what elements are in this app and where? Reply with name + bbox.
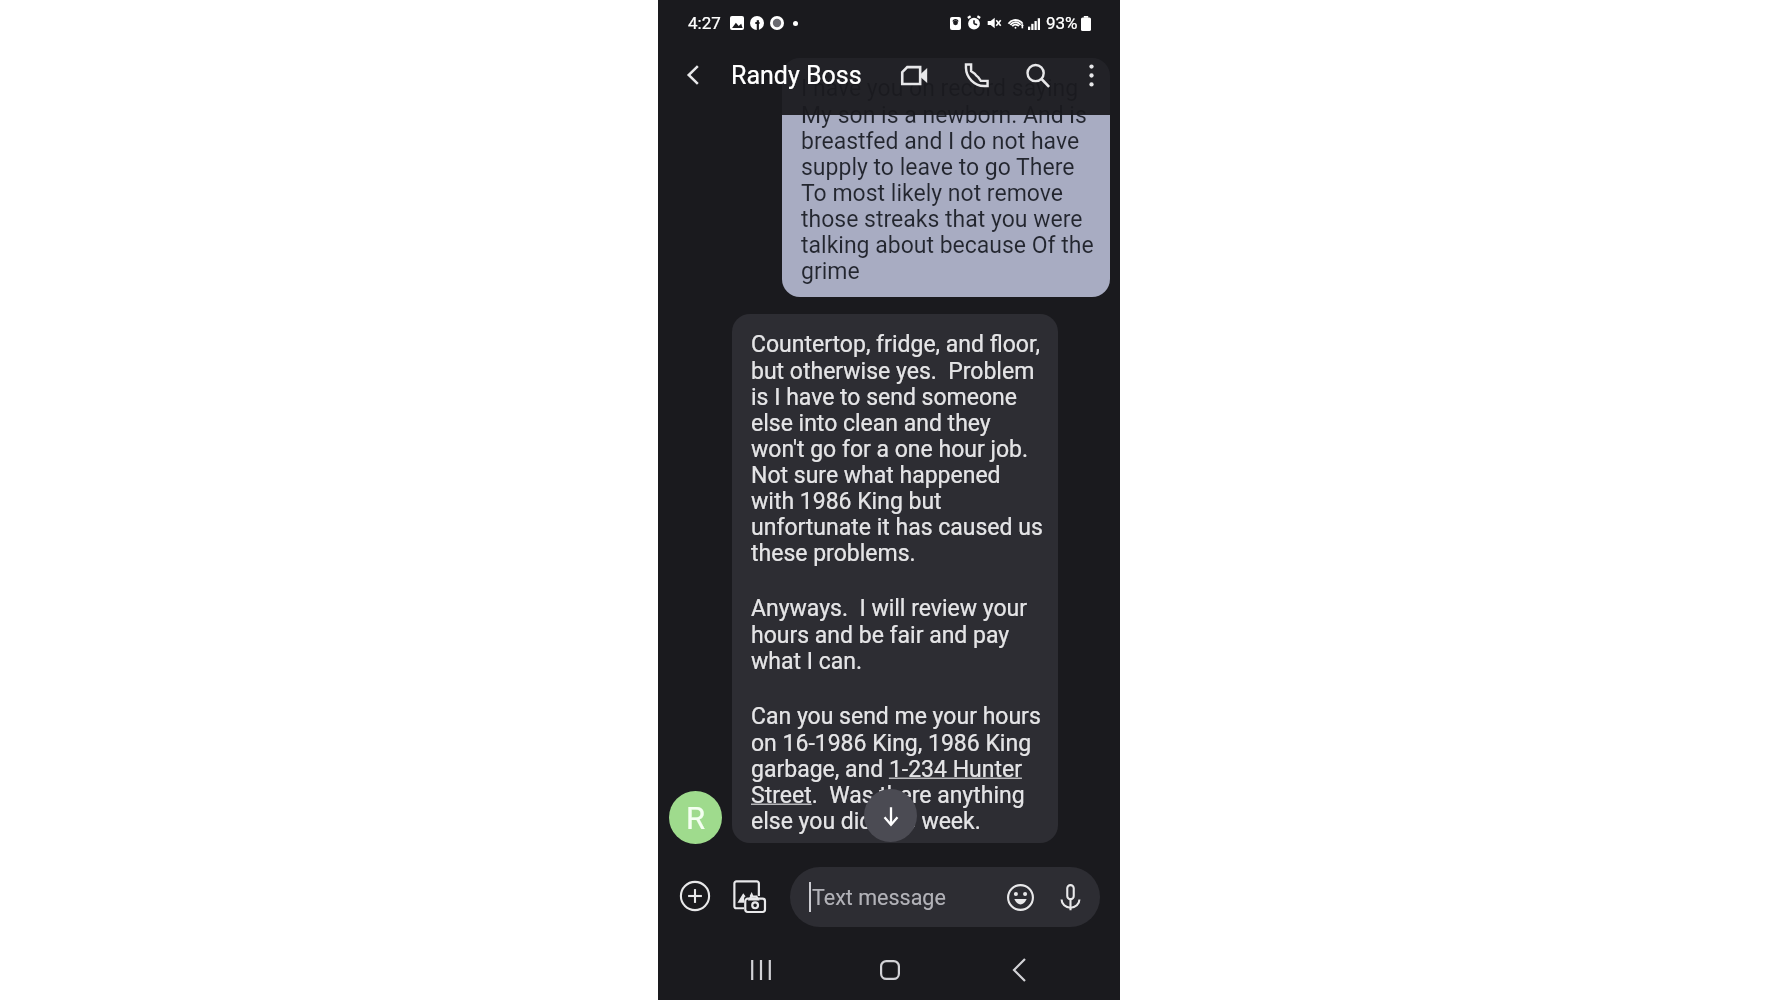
button[interactable]: Search xyxy=(1020,46,1054,104)
button[interactable]: Call xyxy=(959,46,993,104)
staticText: R xyxy=(686,800,706,836)
staticText: 4:27 xyxy=(688,13,721,33)
button[interactable]: More options xyxy=(1074,46,1108,104)
button[interactable]: Countertop, fridge, and floor, but other… xyxy=(732,314,1058,843)
button[interactable]: Add attachment xyxy=(678,879,712,913)
button[interactable]: Back xyxy=(999,950,1040,990)
button[interactable]: Gallery xyxy=(732,879,766,913)
staticText: Can you send me your hours on 16-1986 Ki… xyxy=(751,703,1041,835)
button[interactable]: Back xyxy=(678,59,710,91)
staticText: Anyways. I will review your hours and be… xyxy=(751,595,1028,675)
staticText: 93% xyxy=(1046,13,1078,33)
button[interactable]: Voice input xyxy=(1053,880,1087,914)
button[interactable]: Scroll to bottom xyxy=(864,789,917,842)
button[interactable]: R xyxy=(669,791,722,844)
staticText: I have you on record saying My son is a … xyxy=(801,75,1094,285)
button[interactable]: Emoji xyxy=(1003,880,1037,914)
staticText: Randy Boss xyxy=(731,61,862,90)
button[interactable]: I have you on record saying My son is a … xyxy=(782,58,1110,297)
button[interactable]: Home xyxy=(869,950,910,990)
staticText: Text message xyxy=(812,885,946,910)
button[interactable]: Video call xyxy=(897,46,931,104)
button[interactable]: Recent apps xyxy=(740,950,781,990)
staticText: Countertop, fridge, and floor, but other… xyxy=(751,331,1043,567)
button[interactable]: Text message xyxy=(790,867,1100,927)
